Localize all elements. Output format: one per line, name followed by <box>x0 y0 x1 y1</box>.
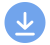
button[interactable]: Download <box>0 0 50 45</box>
